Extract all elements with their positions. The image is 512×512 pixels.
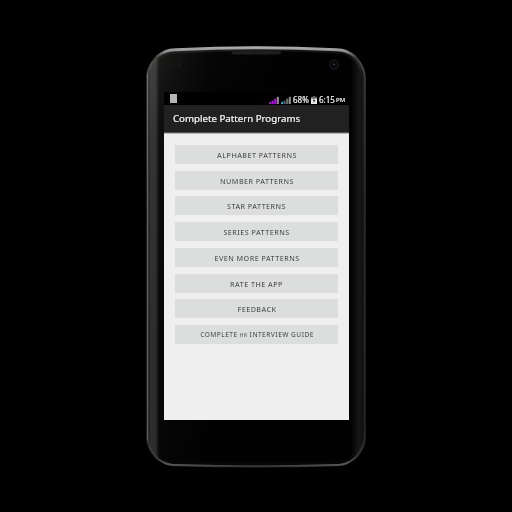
staticText: COMPLETE HR INTERVIEW GUIDE <box>200 330 314 339</box>
button[interactable]: COMPLETE HR INTERVIEW GUIDE <box>175 325 338 344</box>
staticText: SERIES PATTERNS <box>223 227 290 237</box>
button[interactable]: EVEN MORE PATTERNS <box>175 248 338 267</box>
button[interactable]: ALPHABET PATTERNS <box>175 145 338 164</box>
button[interactable]: RATE THE APP <box>175 274 338 293</box>
button[interactable]: STAR PATTERNS <box>175 196 338 215</box>
button[interactable]: SERIES PATTERNS <box>175 222 338 241</box>
staticText: EVEN MORE PATTERNS <box>214 253 300 263</box>
staticText: RATE THE APP <box>230 279 283 289</box>
staticText: ALPHABET PATTERNS <box>217 150 297 160</box>
staticText: STAR PATTERNS <box>227 201 286 211</box>
staticText: 68% <box>293 94 309 105</box>
staticText: Complete Pattern Programs <box>173 112 301 125</box>
button[interactable]: NUMBER PATTERNS <box>175 171 338 190</box>
staticText: 6:15 <box>319 94 335 105</box>
staticText: FEEDBACK <box>237 304 277 314</box>
staticText: PM <box>336 96 346 104</box>
button[interactable]: FEEDBACK <box>175 299 338 318</box>
staticText: NUMBER PATTERNS <box>220 176 294 186</box>
